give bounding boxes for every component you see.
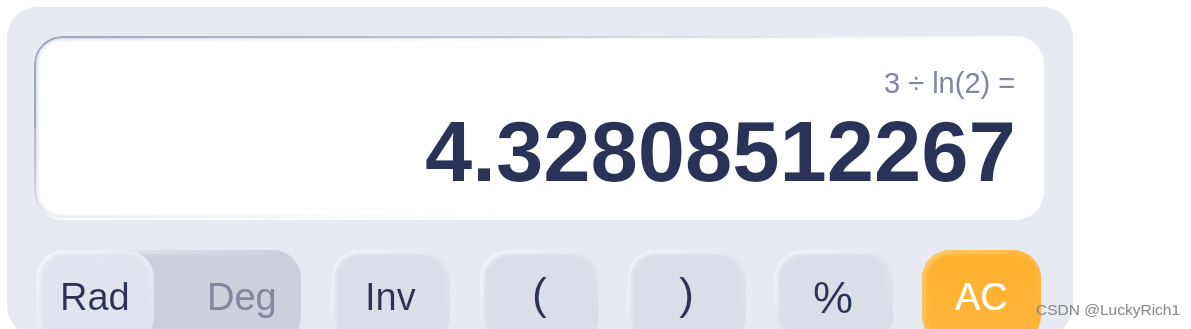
staticText: CSDN @LuckyRich1 [1036, 301, 1181, 318]
staticText: 4.32808512267 [425, 104, 1016, 199]
button[interactable]: ( [480, 250, 599, 329]
button[interactable]: AC [922, 250, 1041, 329]
button[interactable]: Deg [183, 250, 301, 329]
staticText: ) [679, 268, 694, 318]
staticText: % [813, 272, 854, 322]
staticText: Rad [60, 276, 130, 318]
staticText: Inv [365, 276, 416, 318]
staticText: Deg [207, 276, 277, 318]
staticText: ( [532, 268, 547, 318]
button[interactable]: ) [627, 250, 746, 329]
button[interactable]: % [774, 250, 893, 329]
staticText: 3 ÷ ln(2) = [884, 67, 1016, 99]
staticText: AC [955, 276, 1008, 318]
button[interactable]: Rad [36, 250, 154, 329]
button[interactable]: Inv [331, 250, 450, 329]
